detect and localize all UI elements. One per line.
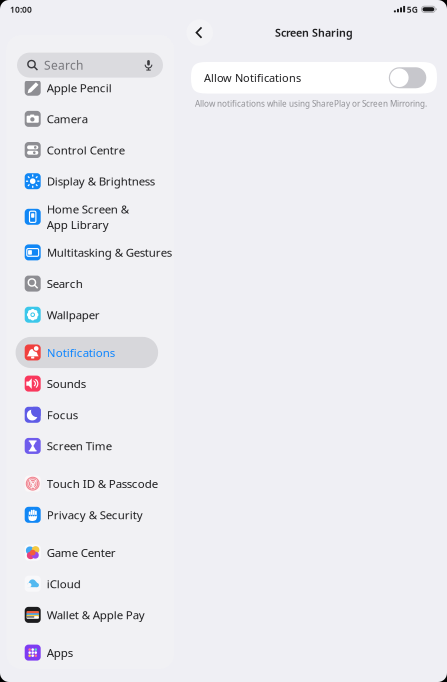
button[interactable]: Notifications [6,337,174,368]
button[interactable]: Apps [6,637,174,668]
button[interactable]: Back [186,19,213,46]
button[interactable]: Multitasking & Gestures [6,237,174,268]
staticText: Search [44,57,83,73]
staticText: Privacy & Security [47,507,143,523]
button[interactable]: Display & Brightness [6,166,174,197]
button[interactable]: Wallpaper [6,299,174,330]
staticText: Multitasking & Gestures [47,245,172,260]
button[interactable]: Search [17,53,163,78]
staticText: Apple Pencil [47,80,112,95]
button[interactable]: Wallet & Apple Pay [6,599,174,630]
staticText: Screen Time [47,438,112,454]
button[interactable]: Camera [6,103,174,134]
staticText: Home Screen & [47,201,129,217]
staticText: Wallet & Apple Pay [47,607,145,623]
button[interactable]: Sounds [6,368,174,399]
staticText: Allow Notifications [204,70,301,85]
button[interactable]: Allow Notifications [191,62,437,93]
button[interactable]: Touch ID & Passcode [6,468,174,499]
staticText: Allow notifications while using SharePla… [195,98,427,109]
button[interactable]: iCloud [6,568,174,599]
button[interactable]: Search [6,268,174,299]
staticText: Notifications [47,345,115,360]
staticText: 10:00 [10,4,32,15]
staticText: Focus [47,407,78,423]
button[interactable]: Screen Time [6,430,174,461]
button[interactable]: Game Center [6,537,174,568]
staticText: Apps [47,645,73,660]
button[interactable]: Control Centre [6,134,174,165]
staticText: Sounds [47,376,86,391]
button[interactable]: Privacy & Security [6,499,174,530]
button[interactable]: Apple Pencil [6,72,174,103]
staticText: Game Center [47,545,116,560]
button[interactable]: Focus [6,399,174,430]
staticText: iCloud [47,576,81,591]
staticText: Wallpaper [47,307,100,322]
staticText: 5G [407,4,418,15]
staticText: Touch ID & Passcode [47,476,158,491]
staticText: Display & Brightness [47,173,155,189]
staticText: Screen Sharing [275,25,353,40]
staticText: App Library [47,217,109,232]
staticText: Search [47,276,83,291]
staticText: Control Centre [47,142,125,158]
button[interactable]: Home Screen & [6,197,174,237]
staticText: Camera [47,111,88,127]
